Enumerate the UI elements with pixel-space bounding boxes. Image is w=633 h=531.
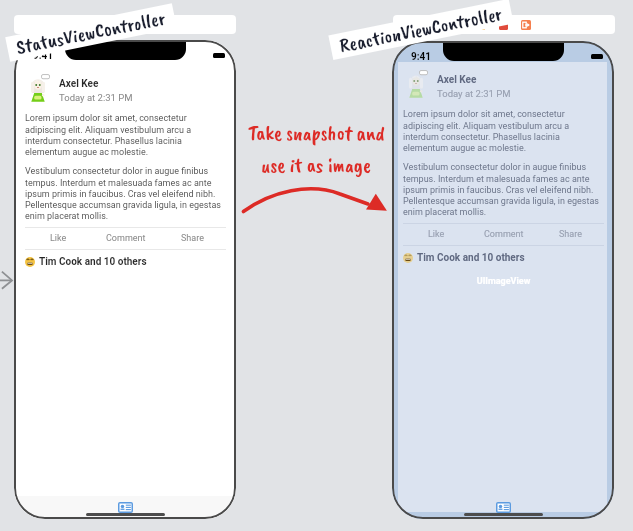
staticText: Lorem ipsum dolor sit amet, consectetur …	[403, 109, 604, 153]
button[interactable]: Share	[537, 224, 604, 245]
staticText: Vestibulum consectetur dolor in augue fi…	[403, 162, 604, 217]
staticText: Tim Cook and 10 others	[417, 252, 525, 264]
button[interactable]: Comment	[92, 228, 159, 249]
button[interactable]: Share	[159, 228, 226, 249]
button[interactable]: Comment	[470, 224, 537, 245]
staticText: Today at 2:31 PM	[59, 92, 133, 103]
staticText: Axel Kee	[59, 78, 99, 90]
staticText: Today at 2:31 PM	[437, 88, 511, 99]
staticText: Comment	[484, 229, 524, 240]
staticText: 9:41	[33, 50, 54, 62]
button[interactable]: Contacts	[496, 502, 511, 513]
staticText: Share	[181, 233, 204, 244]
button[interactable]: Like	[25, 228, 92, 249]
button[interactable]: Like	[403, 224, 470, 245]
staticText: Take snapshot and	[248, 120, 385, 146]
staticText: ReactionViewController	[337, 1, 505, 58]
button[interactable]: Open in new window	[521, 20, 531, 30]
staticText: StatusViewController	[14, 5, 168, 60]
staticText: Lorem ipsum dolor sit amet, consectetur …	[25, 113, 226, 157]
staticText: Tim Cook and 10 others	[39, 256, 147, 268]
button[interactable]: Contacts	[118, 502, 133, 513]
staticText: Vestibulum consectetur dolor in augue fi…	[25, 166, 226, 221]
staticText: Like	[50, 233, 67, 244]
staticText: 9:41	[411, 51, 432, 63]
staticText: Axel Kee	[437, 74, 477, 86]
staticText: Like	[428, 229, 445, 240]
staticText: UIImageView	[403, 276, 604, 287]
staticText: Share	[559, 229, 582, 240]
staticText: Comment	[106, 233, 146, 244]
staticText: use it as image	[261, 152, 371, 178]
